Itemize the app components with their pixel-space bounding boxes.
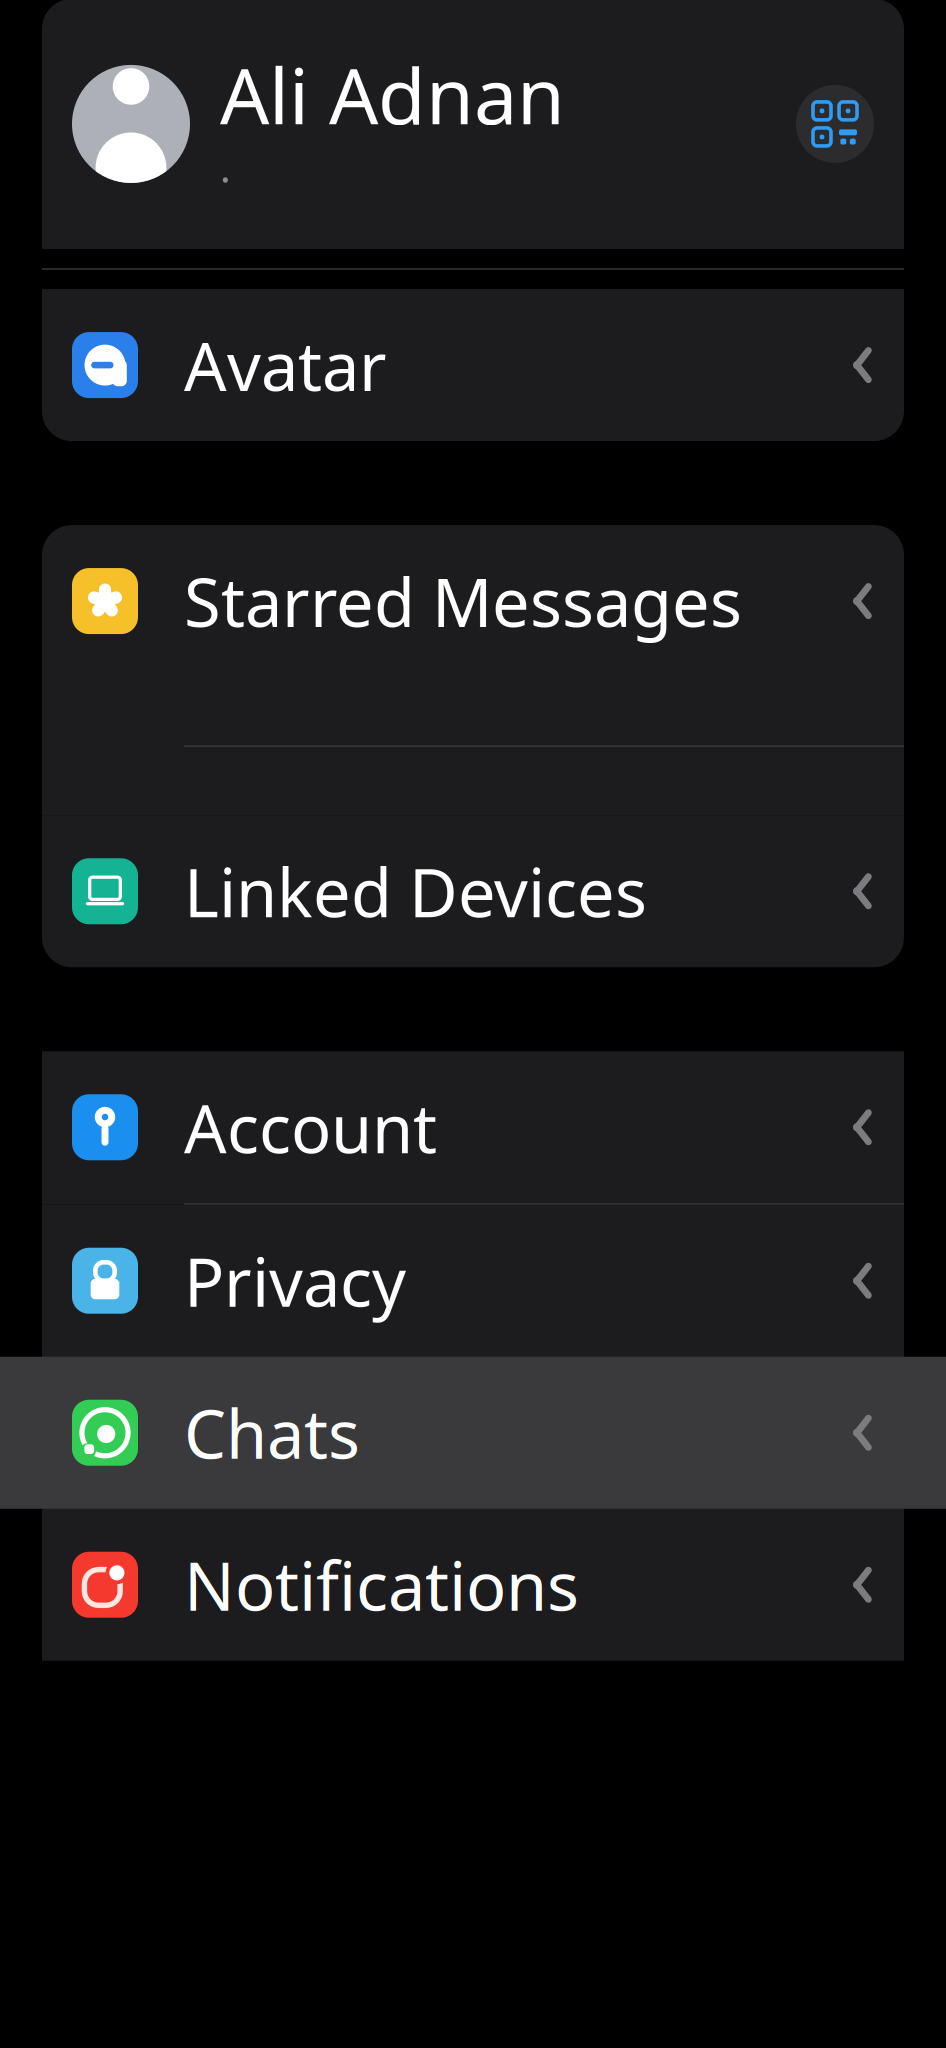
staticText: · bbox=[220, 152, 231, 205]
button[interactable]: Privacy bbox=[42, 1205, 904, 1357]
staticText: Notifications bbox=[184, 1540, 579, 1629]
button[interactable]: Account bbox=[42, 1051, 904, 1205]
staticText: Avatar bbox=[184, 321, 387, 409]
staticText: Account bbox=[184, 1083, 437, 1171]
staticText: Ali Adnan bbox=[220, 43, 565, 146]
staticText: Chats bbox=[184, 1388, 360, 1477]
staticText: Linked Devices bbox=[184, 847, 647, 935]
staticText: Privacy bbox=[184, 1236, 406, 1325]
button[interactable]: Starred Messages bbox=[42, 525, 904, 815]
button[interactable]: Notifications bbox=[42, 1509, 904, 1661]
button[interactable]: Linked Devices bbox=[42, 815, 904, 967]
button[interactable]: Chats bbox=[42, 1357, 904, 1509]
staticText: Starred Messages bbox=[184, 557, 742, 645]
button[interactable]: Avatar bbox=[42, 289, 904, 441]
button[interactable]: Ali Adnan bbox=[42, 0, 904, 249]
